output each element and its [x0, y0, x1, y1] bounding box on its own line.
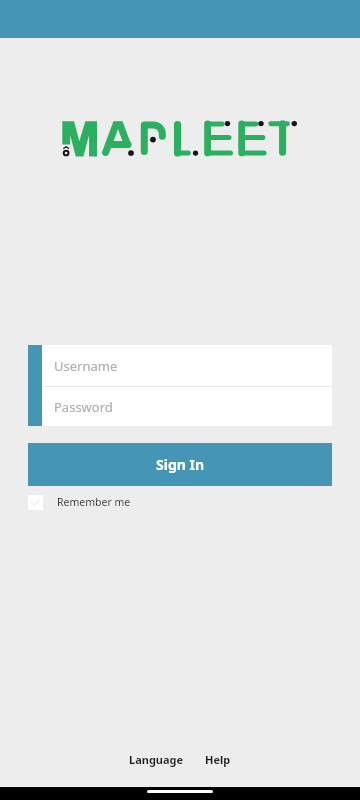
staticText: Username [54, 357, 118, 375]
button[interactable]: Password [42, 387, 332, 426]
button[interactable]: Remember me [28, 492, 131, 512]
button[interactable]: Username [42, 345, 332, 386]
button[interactable]: Help [205, 752, 231, 767]
staticText: Remember me [57, 495, 131, 509]
button[interactable]: Sign In [28, 443, 332, 486]
staticText: Sign In [156, 455, 205, 474]
staticText: Password [54, 398, 113, 416]
button[interactable]: Language [129, 752, 184, 767]
